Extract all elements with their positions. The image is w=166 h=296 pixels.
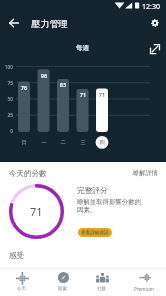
staticText: 0 — [0, 128, 13, 135]
button[interactable]: 瞭解詳情 — [131, 167, 160, 179]
staticText: 一 — [38, 139, 50, 146]
staticText: 每週 — [76, 44, 90, 52]
button[interactable]: 社群 — [82, 268, 122, 296]
staticText: 四 — [96, 139, 108, 146]
staticText: 今天 — [17, 286, 27, 292]
button[interactable]: Back — [4, 13, 24, 33]
staticText: 71 — [96, 91, 108, 99]
button[interactable]: 探索 — [44, 268, 82, 296]
staticText: 83 — [57, 81, 69, 89]
staticText: 完整評分 — [77, 186, 108, 196]
staticText: 12:30 — [142, 2, 160, 12]
staticText: 日 — [18, 139, 30, 146]
staticText: 50 — [0, 96, 13, 103]
staticText: 社群 — [97, 286, 107, 292]
staticText: 三 — [77, 139, 89, 146]
staticText: 今天的分數 — [9, 169, 47, 178]
staticText: 100 — [0, 64, 13, 71]
button[interactable]: Premium — [122, 268, 166, 296]
staticText: 探索 — [58, 286, 68, 292]
staticText: 感受 — [9, 251, 25, 261]
staticText: 71 — [77, 91, 89, 99]
staticText: 查看詳細資訊 — [81, 230, 109, 236]
button[interactable]: 查看詳細資訊 — [78, 228, 112, 237]
staticText: 瞭解詳情 — [133, 169, 158, 177]
staticText: 96 — [38, 72, 50, 80]
button[interactable]: Settings — [145, 13, 165, 33]
button[interactable]: 今天 — [0, 268, 44, 296]
staticText: 壓力管理 — [31, 18, 68, 30]
button[interactable]: Expand chart — [147, 41, 163, 57]
staticText: 75 — [0, 80, 13, 87]
staticText: 瞭解並取得影響分數的因素。 — [77, 198, 145, 214]
staticText: Premium — [134, 286, 154, 292]
staticText: 二 — [57, 139, 69, 146]
staticText: 25 — [0, 112, 13, 119]
staticText: 71 — [30, 204, 43, 219]
staticText: 76 — [18, 84, 30, 92]
